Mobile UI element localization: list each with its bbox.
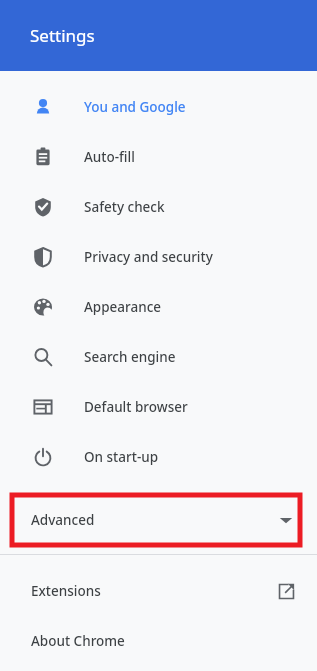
button[interactable]: Appearance: [0, 282, 317, 332]
staticText: On start-up: [84, 448, 159, 466]
staticText: You and Google: [84, 98, 186, 116]
button[interactable]: Privacy and security: [0, 232, 317, 282]
button[interactable]: Advanced: [0, 492, 317, 547]
staticText: Advanced: [31, 511, 95, 529]
button[interactable]: You and Google: [0, 82, 317, 132]
staticText: Appearance: [84, 298, 162, 316]
staticText: Auto-fill: [84, 148, 135, 166]
button[interactable]: Default browser: [0, 382, 317, 432]
button[interactable]: Extensions: [0, 566, 317, 616]
button[interactable]: On start-up: [0, 432, 317, 482]
button[interactable]: Safety check: [0, 182, 317, 232]
staticText: About Chrome: [31, 632, 125, 650]
staticText: Extensions: [31, 582, 101, 600]
staticText: Default browser: [84, 398, 188, 416]
button[interactable]: Search engine: [0, 332, 317, 382]
staticText: Settings: [30, 24, 95, 47]
button[interactable]: About Chrome: [0, 616, 317, 666]
other: Expand Advanced: [279, 513, 293, 527]
staticText: Privacy and security: [84, 248, 213, 266]
other: Open Extensions in new tab: [278, 583, 295, 600]
staticText: Safety check: [84, 198, 165, 216]
staticText: Search engine: [84, 348, 176, 366]
button[interactable]: Auto-fill: [0, 132, 317, 182]
